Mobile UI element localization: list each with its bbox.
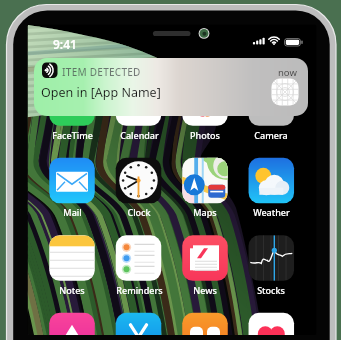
button[interactable]: Clock xyxy=(106,206,172,218)
staticText: Notes xyxy=(59,284,85,296)
staticText: FaceTime xyxy=(52,129,93,141)
button[interactable]: Reminders xyxy=(106,284,172,296)
button[interactable]: Notes xyxy=(39,284,105,296)
button[interactable]: Mail xyxy=(39,206,105,218)
button[interactable]: Photos xyxy=(172,129,238,141)
staticText: Clock xyxy=(127,206,151,218)
staticText: 9:41 xyxy=(53,36,77,52)
button[interactable]: Maps xyxy=(172,206,238,218)
button[interactable]: Calendar xyxy=(106,129,172,141)
button[interactable]: Weather xyxy=(238,206,304,218)
staticText: now xyxy=(278,66,297,79)
staticText: Stocks xyxy=(257,284,285,296)
staticText: Mail xyxy=(63,206,82,218)
staticText: Weather xyxy=(253,206,290,218)
staticText: ITEM DETECTED xyxy=(62,65,141,79)
button[interactable]: Stocks xyxy=(238,284,304,296)
staticText: Camera xyxy=(254,129,288,141)
button[interactable]: FaceTime xyxy=(39,129,105,141)
button[interactable]: News xyxy=(172,284,238,296)
button[interactable]: Camera xyxy=(238,129,304,141)
staticText: Reminders xyxy=(116,284,163,296)
staticText: Open in [App Name] xyxy=(41,84,161,101)
staticText: Photos xyxy=(190,129,220,141)
staticText: Maps xyxy=(193,206,217,218)
staticText: News xyxy=(193,284,217,296)
button[interactable]: ITEM DETECTED xyxy=(34,58,308,116)
staticText: Calendar xyxy=(120,129,159,141)
